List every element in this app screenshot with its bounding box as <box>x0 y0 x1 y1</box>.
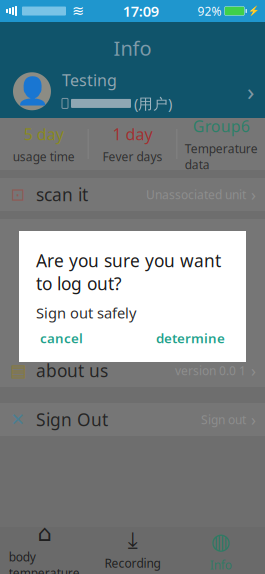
staticText: Testing <box>62 69 117 91</box>
staticText: Sign Out <box>36 408 108 431</box>
staticText: › <box>251 409 256 430</box>
staticText: Sign out safely <box>36 303 136 322</box>
button[interactable]: ⤓ <box>88 527 177 574</box>
staticText: › <box>251 360 256 381</box>
staticText: ⌂ <box>37 520 51 546</box>
button[interactable]: determine <box>152 324 229 352</box>
staticText: Unassociated unit <box>146 186 246 202</box>
staticText: › <box>251 184 256 205</box>
staticText: ≋ <box>72 3 84 19</box>
staticText: cancel <box>40 329 83 347</box>
staticText: ◍ <box>211 528 231 554</box>
staticText: body temperature <box>9 549 80 574</box>
staticText: usage time <box>13 149 75 165</box>
button[interactable]: ◍ <box>177 527 265 574</box>
staticText: Temperature data <box>185 141 258 173</box>
staticText: scan it <box>36 183 88 206</box>
staticText: › <box>247 75 254 107</box>
staticText: 1 day <box>112 123 152 145</box>
staticText: Fever days <box>102 149 162 165</box>
staticText: Info <box>113 35 151 61</box>
staticText: about us <box>36 359 108 382</box>
staticText: 17:09 <box>123 1 159 21</box>
button[interactable]: 👤 <box>0 66 265 116</box>
staticText: (用户) <box>134 94 172 113</box>
staticText: ⚡ <box>248 6 260 16</box>
staticText: determine <box>156 329 225 347</box>
staticText: Info <box>210 557 232 573</box>
staticText: Are you sure you want to log out? <box>36 249 221 295</box>
staticText: 5 day <box>24 123 64 145</box>
staticText: version 0.0 1 <box>175 362 246 378</box>
button[interactable]: cancel <box>36 324 87 352</box>
button[interactable]: ⌂ <box>0 527 88 574</box>
staticText: Sign out <box>201 411 246 427</box>
button[interactable]: ✕ <box>0 403 265 436</box>
staticText: Recording <box>104 555 160 571</box>
staticText: 👤 <box>15 76 48 106</box>
staticText: 92% <box>197 3 221 19</box>
staticText: ⊡ <box>10 185 25 204</box>
staticText: ▤ <box>10 361 26 380</box>
button[interactable]: ▤ <box>0 354 265 387</box>
staticText: ⤓ <box>127 530 137 552</box>
staticText: Group6 <box>193 115 250 137</box>
button[interactable]: ⊡ <box>0 178 265 211</box>
staticText: ✕ <box>10 410 25 429</box>
